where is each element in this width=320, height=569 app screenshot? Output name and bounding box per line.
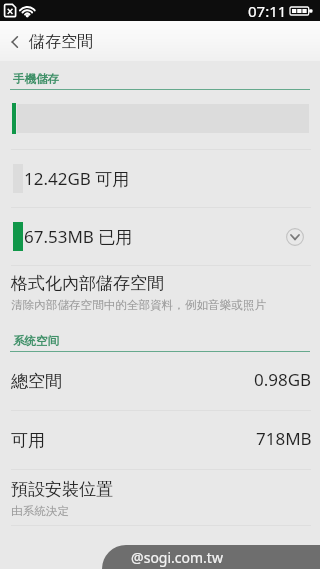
button[interactable]: 預設安裝位置 [0, 470, 320, 525]
button[interactable]: 總空間 [0, 352, 320, 410]
staticText: 預設安裝位置 [11, 479, 113, 500]
button[interactable]: Back [0, 21, 28, 61]
staticText: 格式化內部儲存空間 [11, 273, 164, 294]
staticText: 718MB [256, 427, 312, 450]
staticText: 12.42GB 可用 [24, 167, 130, 190]
staticText: 總空間 [11, 371, 62, 392]
staticText: @sogi.com.tw [131, 548, 223, 567]
button[interactable]: 可用 [0, 411, 320, 469]
button[interactable]: Expand [286, 228, 304, 246]
button[interactable]: 67.53MB 已用 [0, 208, 320, 265]
staticText: 07:11 [248, 1, 287, 21]
staticText: 清除內部儲存空間中的全部資料，例如音樂或照片 [11, 298, 267, 313]
staticText: 由系統決定 [11, 504, 69, 519]
button[interactable]: 格式化內部儲存空間 [0, 266, 320, 316]
staticText: 手機儲存 [13, 72, 59, 86]
staticText: 67.53MB 已用 [24, 225, 133, 248]
staticText: 可用 [11, 430, 45, 451]
staticText: 儲存空間 [29, 32, 93, 52]
staticText: 0.98GB [254, 368, 312, 391]
button[interactable]: 12.42GB 可用 [0, 150, 320, 207]
staticText: 系统空间 [13, 334, 59, 348]
